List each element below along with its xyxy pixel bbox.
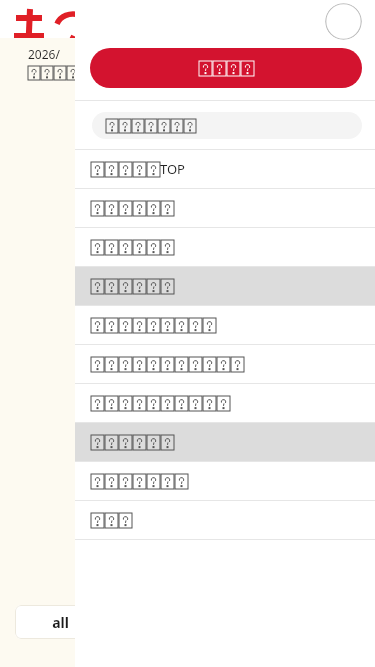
button[interactable] bbox=[75, 189, 375, 227]
button[interactable]: Close menu bbox=[325, 3, 362, 40]
staticText: all bbox=[52, 613, 69, 632]
staticText: 2026/ bbox=[28, 46, 60, 62]
staticText: TOP bbox=[160, 160, 185, 178]
button[interactable] bbox=[75, 462, 375, 500]
button[interactable] bbox=[75, 228, 375, 266]
button[interactable]: TOP bbox=[75, 150, 375, 188]
button[interactable] bbox=[92, 112, 362, 139]
button[interactable] bbox=[75, 501, 375, 539]
button[interactable] bbox=[75, 306, 375, 344]
button[interactable] bbox=[75, 384, 375, 422]
button[interactable]: all bbox=[15, 605, 105, 639]
button[interactable] bbox=[75, 345, 375, 383]
button[interactable] bbox=[75, 267, 375, 305]
button[interactable] bbox=[75, 423, 375, 461]
button[interactable] bbox=[90, 48, 362, 88]
